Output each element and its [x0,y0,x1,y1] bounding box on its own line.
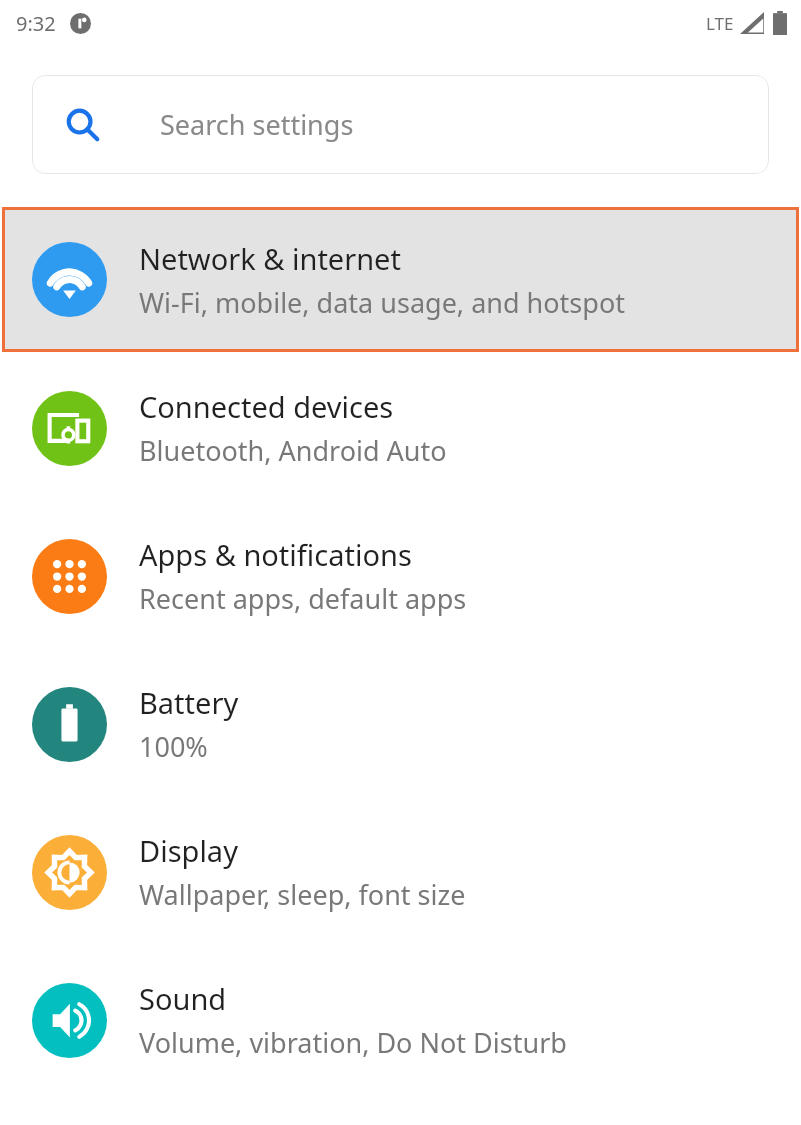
staticText: Sound [139,979,227,1018]
staticText: Display [139,831,238,870]
button[interactable]: Connected devices [0,354,801,502]
staticText: Recent apps, default apps [139,580,467,617]
staticText: Wallpaper, sleep, font size [139,876,466,913]
staticText: Wi-Fi, mobile, data usage, and hotspot [139,284,625,321]
staticText: LTE [706,12,734,35]
button[interactable]: Search settings [32,75,769,174]
staticText: Connected devices [139,387,394,426]
button[interactable]: Display [0,798,801,946]
staticText: Volume, vibration, Do Not Disturb [139,1024,567,1061]
staticText: Network & internet [139,239,401,278]
button[interactable]: Network & internet [2,207,799,352]
button[interactable]: Apps & notifications [0,502,801,650]
staticText: Bluetooth, Android Auto [139,432,447,469]
button[interactable]: Battery [0,650,801,798]
staticText: 9:32 [16,10,56,37]
staticText: Apps & notifications [139,535,412,574]
staticText: Battery [139,683,239,722]
staticText: Search settings [160,106,354,143]
staticText: 100% [139,728,208,765]
button[interactable]: Sound [0,946,801,1094]
